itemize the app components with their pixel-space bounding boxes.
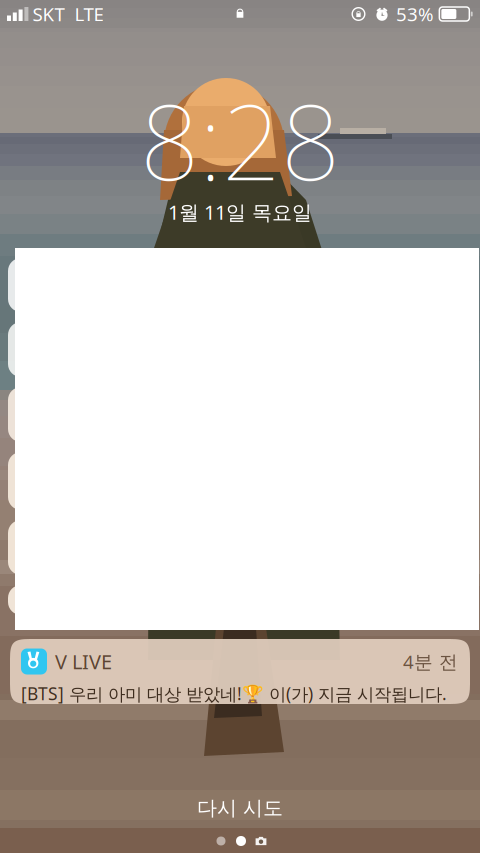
staticText: 53% bbox=[396, 2, 434, 26]
button[interactable]: V LIVE bbox=[10, 639, 470, 704]
button[interactable]: Camera bbox=[251, 833, 271, 849]
staticText: 다시 시도 bbox=[197, 796, 283, 820]
staticText: 4분 전 bbox=[403, 649, 458, 674]
staticText: 1월 11일 목요일 bbox=[168, 199, 312, 225]
staticText: V LIVE bbox=[55, 648, 112, 675]
staticText: SKT bbox=[32, 2, 64, 26]
staticText: 8:28 bbox=[140, 71, 340, 209]
staticText: [BTS] 우리 아미 대상 받았네!🏆 이(가) 지금 시작됩니다. bbox=[21, 682, 447, 705]
button[interactable]: Widgets page bbox=[211, 833, 231, 849]
staticText: LTE bbox=[74, 2, 103, 26]
button[interactable]: Lock screen page bbox=[231, 833, 251, 849]
